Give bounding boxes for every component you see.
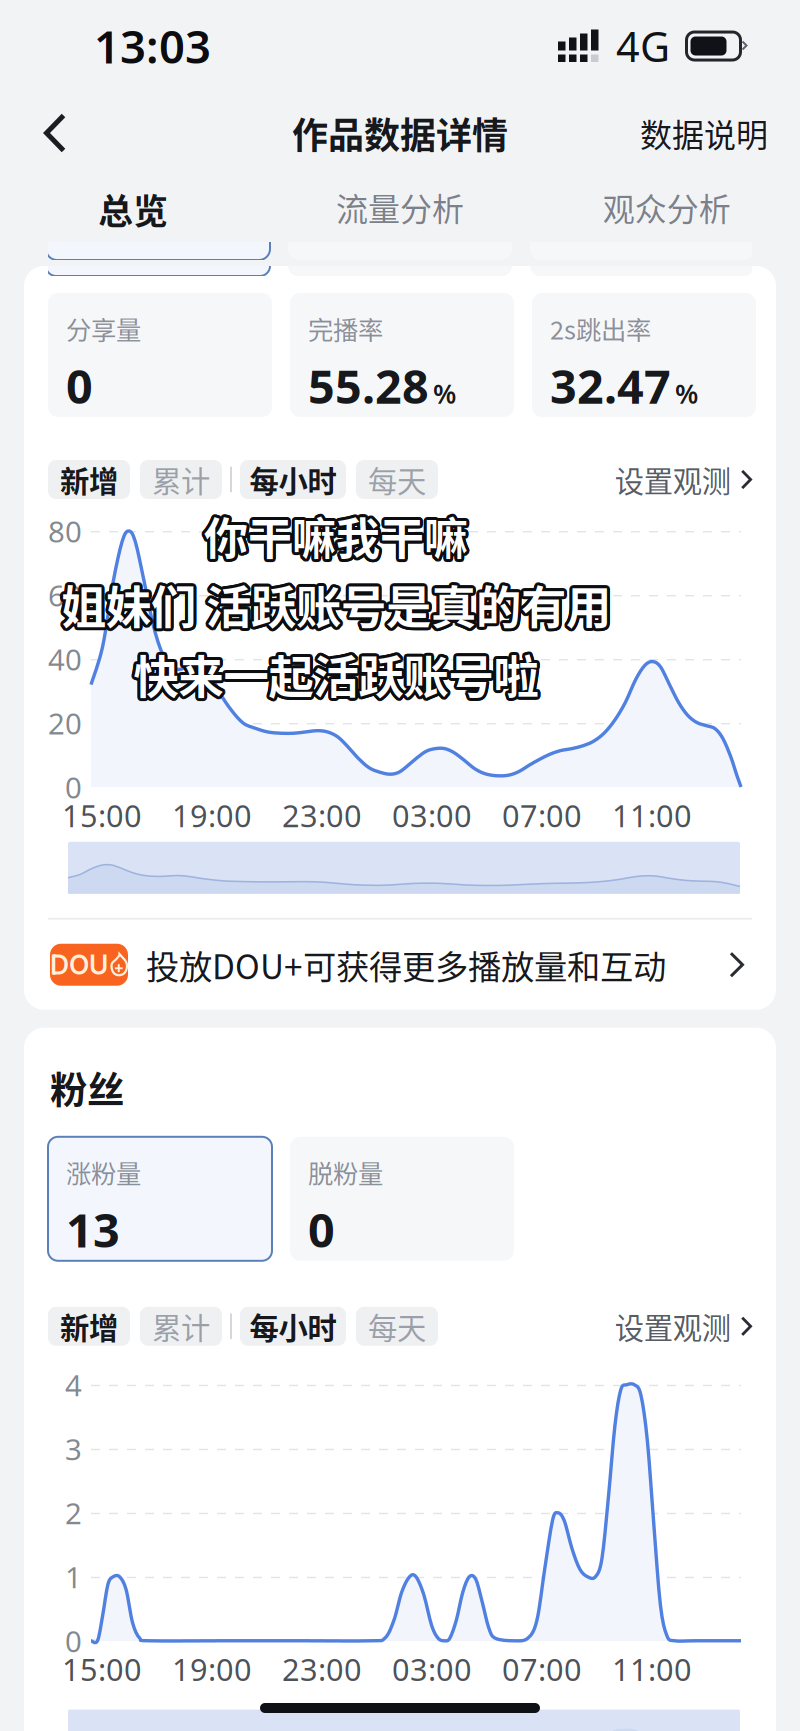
button[interactable]: DOU [48,920,752,1010]
staticText: 姐妹们 活跃账号是真的有用 [63,570,613,635]
staticText: 快来一起活跃账号啦 [136,640,541,706]
staticText: 23:00 [282,1649,362,1689]
button[interactable]: 新增 [48,460,130,499]
button[interactable]: 2s跳出率 [532,293,756,417]
staticText: 3 [65,1429,82,1468]
staticText: 脱粉量 [308,1154,383,1190]
button[interactable]: 脱粉量 [290,1137,514,1261]
button[interactable]: 每小时 [240,1307,346,1346]
staticText: 07:00 [502,1649,582,1689]
staticText: 你干嘛我干嘛 [205,501,469,565]
staticText: 快来一起活跃账号啦 [136,641,541,707]
button[interactable]: 每天 [356,1307,438,1346]
staticText: 80 [48,511,82,550]
staticText: 每天 [368,458,426,501]
staticText: 32.47 [550,355,671,417]
staticText: 姐妹们 活跃账号是真的有用 [61,569,611,634]
staticText: 姐妹们 活跃账号是真的有用 [64,571,614,636]
staticText: 数据说明 [640,110,768,156]
staticText: 设置观测 [615,458,731,501]
staticText: 快来一起活跃账号啦 [131,639,536,705]
staticText: % [675,376,698,411]
staticText: 你干嘛我干嘛 [201,503,465,567]
staticText: 快来一起活跃账号啦 [130,641,535,707]
button[interactable]: 总览 [0,174,267,260]
staticText: 你干嘛我干嘛 [204,504,468,568]
staticText: 你干嘛我干嘛 [207,503,471,567]
button[interactable]: 数据说明 [640,96,768,170]
staticText: 快来一起活跃账号啦 [133,644,538,710]
staticText: 15:00 [62,1649,142,1689]
button[interactable]: 涨粉量 [48,1137,272,1261]
staticText: 姐妹们 活跃账号是真的有用 [62,569,612,635]
staticText: 快来一起活跃账号啦 [132,639,537,704]
staticText: 0 [308,1198,335,1260]
button[interactable]: 累计 [140,1307,222,1346]
staticText: 你干嘛我干嘛 [206,502,470,566]
staticText: 2 [65,1493,82,1532]
staticText: 2s跳出率 [550,310,651,347]
staticText: 你干嘛我干嘛 [202,502,466,566]
staticText: 60 [48,575,82,614]
staticText: 你干嘛我干嘛 [204,501,468,565]
staticText: DOU [50,949,108,981]
staticText: 快来一起活跃账号啦 [132,644,537,710]
staticText: 你干嘛我干嘛 [207,504,471,568]
staticText: 0 [65,767,82,806]
button[interactable]: 设置观测 [615,460,752,499]
staticText: 每天 [368,1305,426,1347]
staticText: 姐妹们 活跃账号是真的有用 [64,573,614,638]
staticText: 快来一起活跃账号啦 [133,641,538,707]
staticText: 姐妹们 活跃账号是真的有用 [59,574,609,639]
staticText: 07:00 [502,795,582,836]
staticText: 4 [65,1365,82,1404]
staticText: 0 [65,1621,82,1660]
staticText: 03:00 [392,1649,472,1689]
staticText: 姐妹们 活跃账号是真的有用 [64,572,614,637]
staticText: 11:00 [612,1649,692,1689]
staticText: 0 [66,355,93,417]
staticText: 新增 [60,1305,118,1347]
staticText: 15:00 [62,795,142,836]
staticText: 40 [48,639,82,678]
staticText: 每小时 [249,458,336,501]
staticText: 姐妹们 活跃账号是真的有用 [59,570,609,635]
button[interactable]: 新增 [48,1307,130,1346]
button[interactable]: 设置观测 [615,1307,752,1346]
button[interactable]: 观众分析 [533,174,800,260]
button[interactable]: 完播率 [290,293,514,417]
staticText: 姐妹们 活跃账号是真的有用 [60,569,610,635]
staticText: 你干嘛我干嘛 [204,507,468,571]
staticText: 投放DOU+可获得更多播放量和互动 [146,941,666,989]
button[interactable]: 每天 [356,460,438,499]
staticText: 姐妹们 活跃账号是真的有用 [60,574,610,640]
button[interactable]: 流量分析 [267,174,533,260]
staticText: 23:00 [282,795,362,836]
staticText: 分享量 [66,310,141,347]
staticText: 快来一起活跃账号啦 [135,644,540,710]
staticText: 13 [66,1198,120,1260]
staticText: 13:03 [94,16,211,76]
staticText: 你干嘛我干嘛 [202,506,466,570]
staticText: 快来一起活跃账号啦 [131,643,536,709]
button[interactable]: 累计 [140,460,222,499]
staticText: 粉丝 [50,1061,124,1115]
staticText: 你干嘛我干嘛 [203,507,467,570]
button[interactable]: 分享量 [48,293,272,417]
staticText: 19:00 [172,795,252,836]
staticText: 4G [616,19,670,73]
staticText: 每小时 [249,1305,336,1347]
staticText: 快来一起活跃账号啦 [131,642,536,708]
staticText: 20 [48,703,82,742]
staticText: 新增 [60,458,118,501]
button[interactable]: 每小时 [240,460,346,499]
staticText: 55.28 [308,355,429,417]
staticText: 姐妹们 活跃账号是真的有用 [61,575,611,640]
staticText: 姐妹们 活跃账号是真的有用 [58,572,608,637]
staticText: 流量分析 [336,184,464,230]
staticText: 快来一起活跃账号啦 [136,639,541,705]
button[interactable]: 返回 [22,99,92,167]
staticText: 姐妹们 活跃账号是真的有用 [58,573,608,638]
staticText: 观众分析 [603,184,731,230]
staticText: 你干嘛我干嘛 [207,505,471,569]
